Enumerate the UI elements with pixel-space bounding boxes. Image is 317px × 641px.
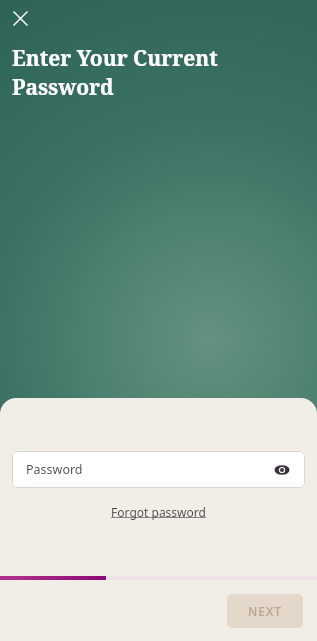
staticText: Password	[26, 461, 269, 478]
staticText: Enter Your Current	[12, 44, 218, 73]
button[interactable]: Close	[6, 4, 34, 32]
staticText: Password	[12, 73, 114, 102]
button[interactable]: Show password	[269, 457, 295, 483]
button[interactable]: Forgot password	[105, 501, 212, 523]
button[interactable]: Password	[12, 451, 305, 488]
staticText: Forgot password	[111, 504, 206, 520]
staticText: NEXT	[248, 603, 283, 619]
button[interactable]: NEXT	[227, 594, 303, 628]
